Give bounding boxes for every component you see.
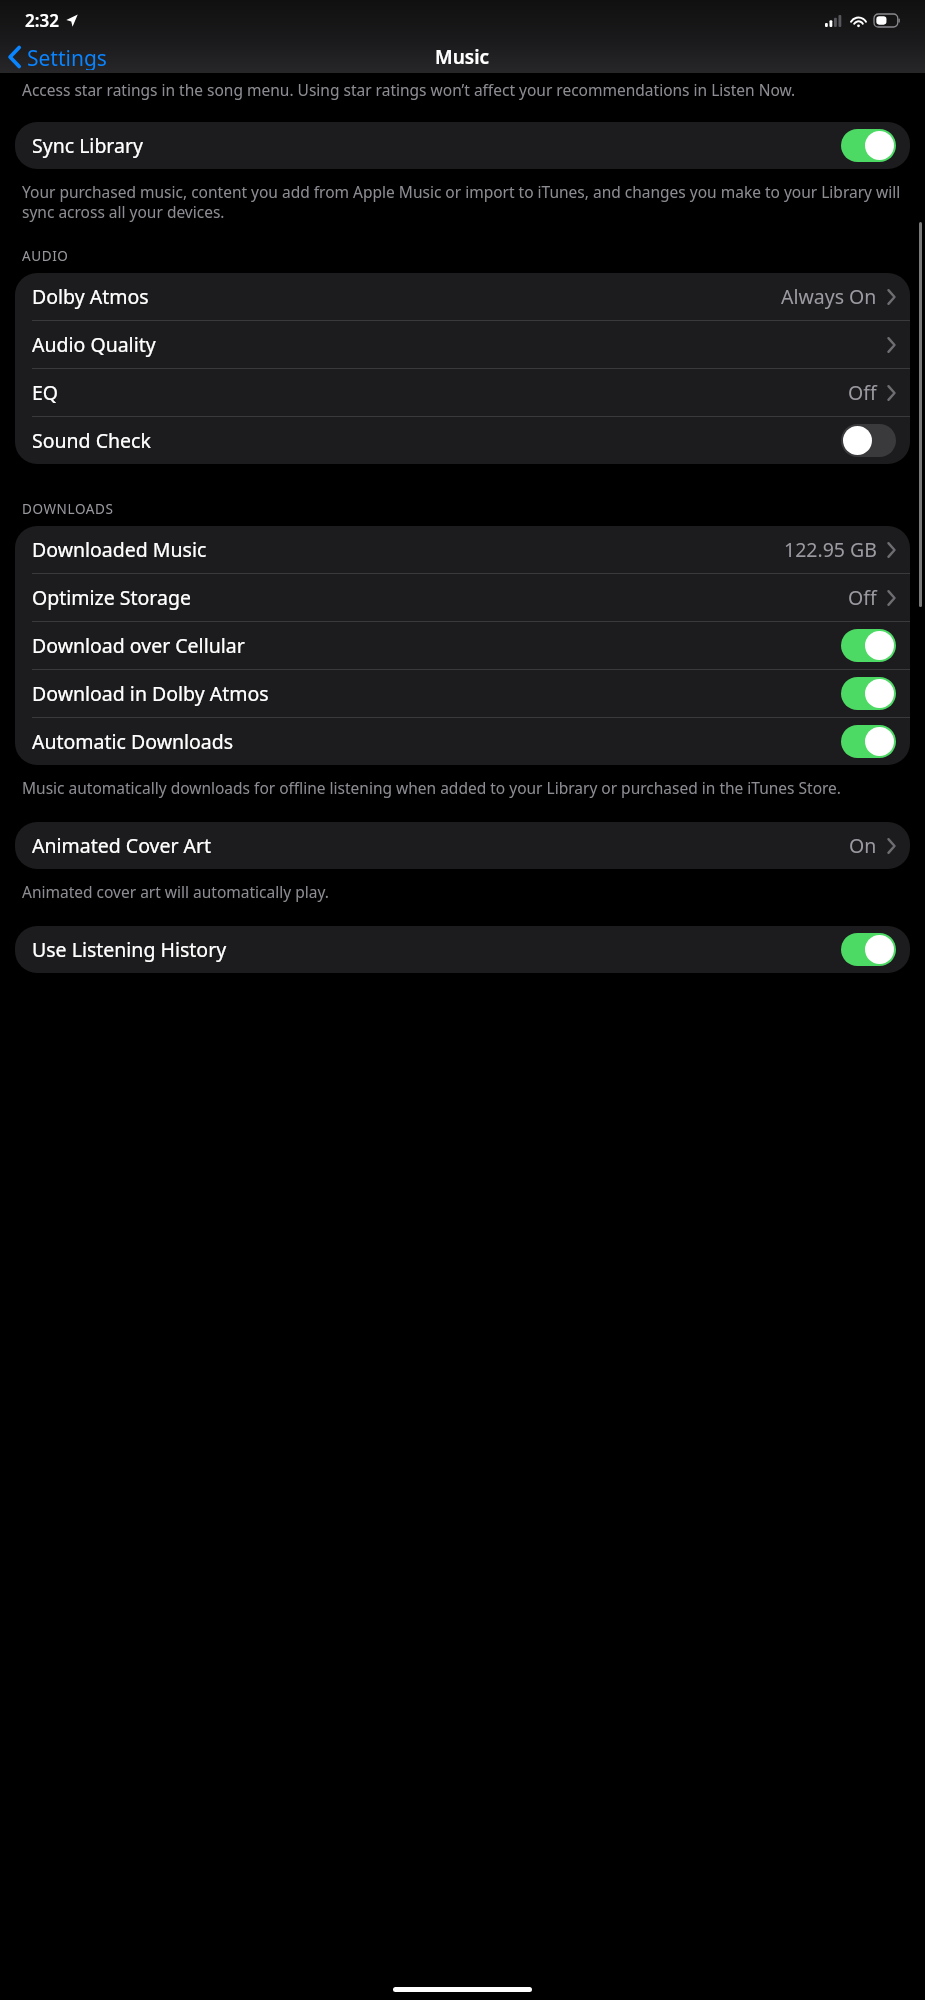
button[interactable]: Toggle off [841, 424, 896, 457]
staticText: AUDIO [22, 247, 69, 265]
staticText: 122.95 GB [784, 536, 877, 563]
staticText: Off [848, 379, 877, 406]
staticText: Optimize Storage [32, 584, 191, 611]
staticText: Settings [27, 44, 107, 70]
staticText: Download in Dolby Atmos [32, 680, 269, 707]
staticText: Always On [781, 283, 877, 310]
staticText: Sync Library [32, 132, 143, 159]
staticText: Audio Quality [32, 331, 156, 358]
button[interactable]: Download over Cellular [15, 622, 910, 669]
staticText: DOWNLOADS [22, 500, 114, 518]
staticText: Off [848, 584, 877, 611]
button[interactable]: Toggle on [841, 129, 896, 162]
button[interactable]: EQ [15, 369, 910, 416]
staticText: Downloaded Music [32, 536, 207, 563]
button[interactable]: Download in Dolby Atmos [15, 670, 910, 717]
staticText: Download over Cellular [32, 632, 245, 659]
staticText: On [849, 832, 877, 859]
staticText: Dolby Atmos [32, 283, 149, 310]
staticText: Sound Check [32, 427, 151, 454]
staticText: Use Listening History [32, 936, 227, 963]
button[interactable]: Sync Library [15, 122, 910, 169]
staticText: Music [435, 44, 490, 70]
button[interactable]: Dolby Atmos [15, 273, 910, 320]
button[interactable]: Animated Cover Art [15, 822, 910, 869]
button[interactable]: Settings [0, 41, 117, 73]
staticText: EQ [32, 379, 59, 406]
staticText: Access star ratings in the song menu. Us… [22, 79, 796, 100]
staticText: Music automatically downloads for offlin… [22, 777, 841, 798]
button[interactable]: Use Listening History [15, 926, 910, 973]
button[interactable]: Optimize Storage [15, 574, 910, 621]
button[interactable]: Toggle on [841, 933, 896, 966]
button[interactable]: Audio Quality [15, 321, 910, 368]
staticText: Your purchased music, content you add fr… [22, 181, 903, 223]
button[interactable]: Toggle on [841, 725, 896, 758]
button[interactable]: Toggle on [841, 629, 896, 662]
button[interactable]: Downloaded Music [15, 526, 910, 573]
staticText: Automatic Downloads [32, 728, 234, 755]
button[interactable]: Sound Check [15, 417, 910, 464]
button[interactable]: Toggle on [841, 677, 896, 710]
staticText: 2:32 [25, 9, 59, 32]
staticText: Animated Cover Art [32, 832, 212, 859]
button[interactable]: Automatic Downloads [15, 718, 910, 765]
staticText: Animated cover art will automatically pl… [22, 881, 329, 902]
